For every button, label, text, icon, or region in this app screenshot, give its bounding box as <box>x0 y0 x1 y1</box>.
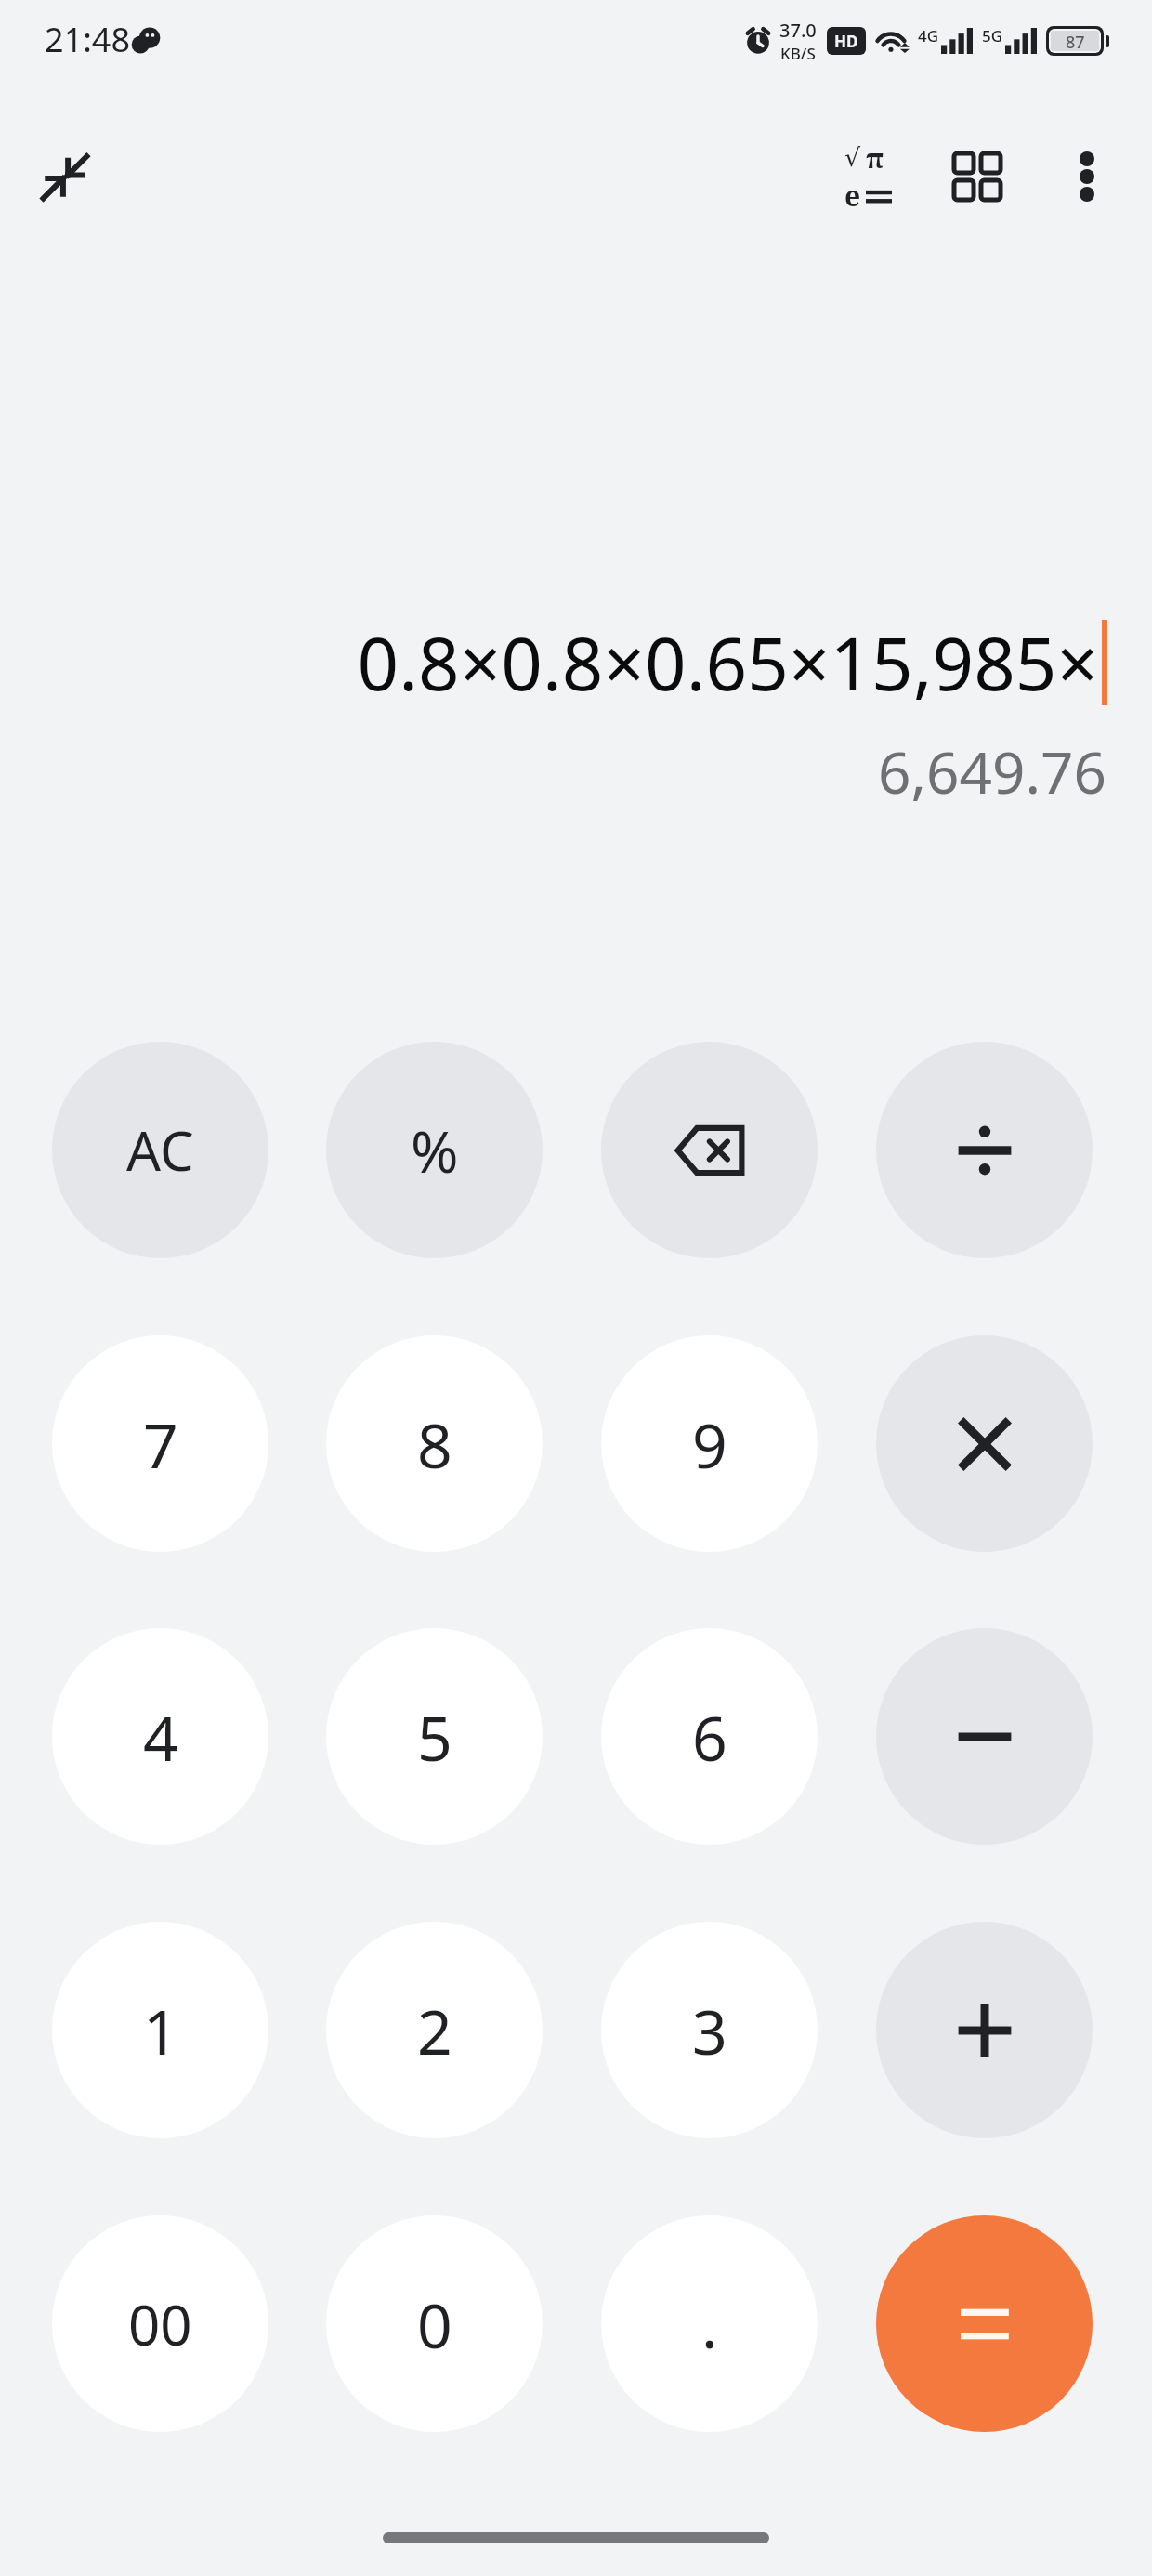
staticText: 00 <box>128 2286 192 2362</box>
staticText: 8 <box>417 1402 452 1486</box>
button[interactable]: AC <box>52 1042 268 1258</box>
button[interactable]: . <box>601 2215 818 2432</box>
button[interactable]: More options <box>1035 125 1139 229</box>
staticText: 5 <box>417 1695 452 1779</box>
staticText: 1 <box>143 1989 178 2072</box>
button[interactable]: Multiply <box>876 1335 1093 1552</box>
staticText: % <box>411 1111 459 1189</box>
staticText: 2 <box>417 1989 452 2072</box>
staticText: 6,649.76 <box>878 732 1107 810</box>
staticText: 4 <box>143 1695 178 1779</box>
staticText: KB/S <box>780 43 816 64</box>
button[interactable]: 9 <box>601 1335 818 1552</box>
button[interactable]: 5 <box>326 1628 543 1845</box>
staticText: √ <box>844 143 861 172</box>
button[interactable]: 0 <box>326 2215 543 2432</box>
staticText: 21:48 <box>45 17 131 62</box>
button[interactable]: 00 <box>52 2215 268 2432</box>
staticText: 4G <box>918 25 939 46</box>
staticText: π <box>866 139 884 176</box>
staticText: 5G <box>982 25 1003 46</box>
button[interactable]: 8 <box>326 1335 543 1552</box>
button[interactable]: 1 <box>52 1922 268 2138</box>
staticText: 87 <box>1066 31 1085 51</box>
staticText: . <box>701 2282 718 2366</box>
button[interactable]: History <box>925 125 1029 229</box>
button[interactable]: Plus <box>876 1922 1093 2138</box>
staticText: AC <box>126 1113 194 1187</box>
staticText: 6 <box>692 1695 727 1779</box>
button[interactable]: 4 <box>52 1628 268 1845</box>
button[interactable]: Equals <box>876 2215 1093 2432</box>
button[interactable]: Scientific mode <box>816 125 920 229</box>
staticText: HD <box>834 31 858 52</box>
staticText: 9 <box>692 1402 727 1486</box>
button[interactable]: Backspace <box>601 1042 818 1258</box>
staticText: 0 <box>417 2282 452 2366</box>
staticText: 3 <box>692 1989 727 2072</box>
button[interactable]: 6 <box>601 1628 818 1845</box>
button[interactable]: 3 <box>601 1922 818 2138</box>
button[interactable]: 2 <box>326 1922 543 2138</box>
staticText: e <box>844 177 861 215</box>
staticText: 7 <box>143 1402 178 1486</box>
staticText: 37.0 <box>779 18 817 43</box>
staticText: 0.8×0.8×0.65×15,985× <box>357 613 1098 712</box>
button[interactable]: Minus <box>876 1628 1093 1845</box>
button[interactable]: % <box>326 1042 543 1258</box>
button[interactable]: Divide <box>876 1042 1093 1258</box>
button[interactable]: 7 <box>52 1335 268 1552</box>
button[interactable]: Collapse <box>20 132 110 221</box>
